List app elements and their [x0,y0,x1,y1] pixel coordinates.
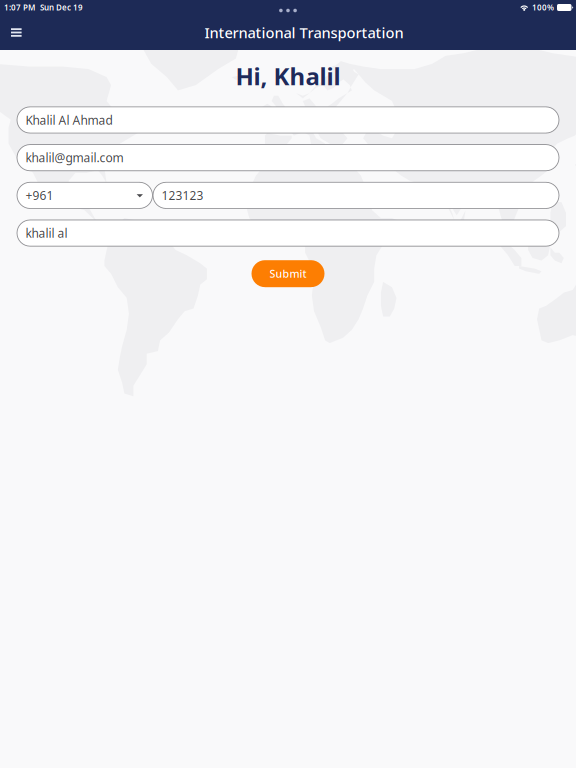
button[interactable]: +961 [17,182,152,208]
staticText: Submit [269,267,306,281]
staticText: khalil@gmail.com [25,150,123,166]
button[interactable]: khalil al [17,220,559,246]
button[interactable]: 123123 [153,182,559,208]
staticText: Hi, Khalil [235,60,340,92]
staticText: 123123 [161,187,203,203]
staticText: +961 [25,187,53,203]
staticText: International Transportation [204,23,403,42]
button[interactable]: khalil@gmail.com [17,145,559,171]
staticText: Khalil Al Ahmad [25,112,112,128]
staticText: khalil al [25,225,67,241]
button[interactable]: Menu [0,21,33,49]
staticText: Sun Dec 19 [40,2,83,13]
button[interactable]: Submit [251,260,324,287]
button[interactable]: Khalil Al Ahmad [17,107,559,133]
staticText: 100% [532,2,554,13]
staticText: 1:07 PM [4,2,35,13]
